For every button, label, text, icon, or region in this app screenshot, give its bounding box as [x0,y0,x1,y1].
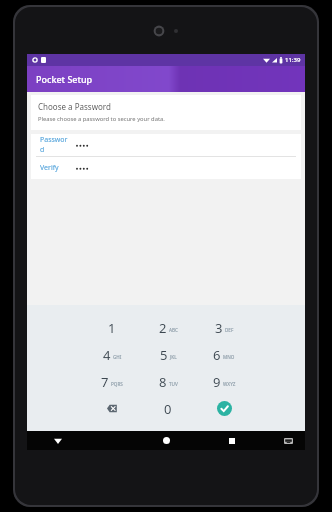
button[interactable]: 9 [196,368,252,395]
button[interactable]: Back [45,431,71,450]
staticText: Password [40,135,69,155]
staticText: 6 [213,346,221,364]
button[interactable]: Choose a Password [31,95,301,130]
staticText: 5 [160,346,168,364]
staticText: Please choose a password to secure your … [38,115,165,123]
staticText: Verify [40,163,69,173]
staticText: GHI [113,354,122,360]
button[interactable]: Switch keyboard [279,431,297,450]
button[interactable]: 6 [196,341,252,368]
staticText: WXYZ [223,381,236,387]
button[interactable]: Verify [31,157,301,179]
staticText: Choose a Password [38,101,111,112]
staticText: 11:39 [285,56,301,64]
button[interactable]: Home [153,431,179,450]
staticText: 8 [159,373,167,391]
button[interactable]: 7 [84,368,140,395]
staticText: Pocket Setup [36,73,93,85]
staticText: MNO [223,354,235,360]
button[interactable]: 1 [84,314,140,341]
staticText: DEF [225,327,234,333]
staticText: ABC [169,327,178,333]
staticText: 4 [103,346,111,364]
staticText: 9 [213,373,221,391]
staticText: PQRS [111,381,123,387]
staticText: 3 [215,319,223,337]
button[interactable]: Confirm [196,395,252,422]
button[interactable]: 0 [140,395,196,422]
button[interactable]: 5 [140,341,196,368]
staticText: JKL [170,354,177,360]
staticText: 0 [164,400,172,418]
staticText: TUV [169,381,178,387]
staticText: 7 [101,373,109,391]
button[interactable]: 2 [140,314,196,341]
button[interactable]: Password [31,134,301,156]
button[interactable]: 4 [84,341,140,368]
button[interactable]: 8 [140,368,196,395]
button[interactable]: Recent apps [219,431,245,450]
button[interactable]: 3 [196,314,252,341]
button[interactable]: Backspace [84,395,140,422]
staticText: 2 [159,319,167,337]
staticText: 1 [108,319,116,337]
